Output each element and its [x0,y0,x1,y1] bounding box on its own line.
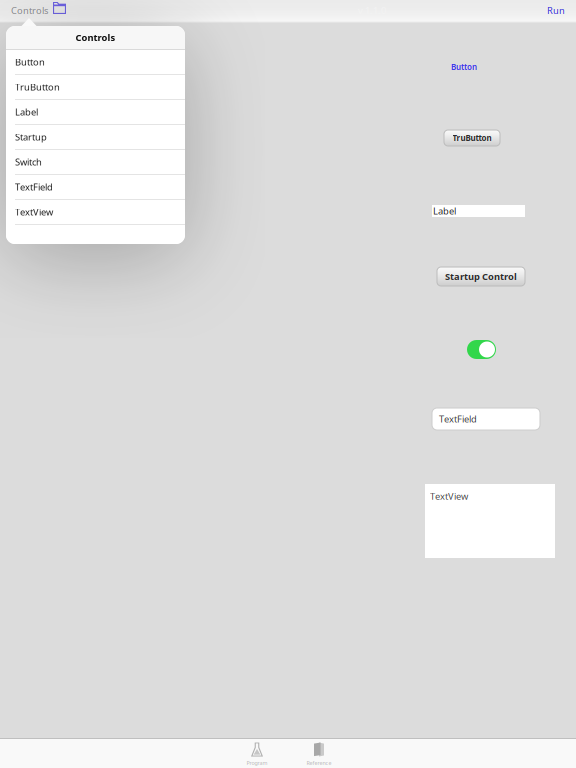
staticText: TruButton [452,133,491,143]
staticText: TextView [15,206,53,218]
staticText: Startup [15,131,47,143]
staticText: Program [246,759,267,767]
staticText: Button [451,62,477,72]
button[interactable]: Switch [6,150,185,175]
button[interactable]: Controls [0,0,72,21]
button[interactable]: Startup [6,125,185,150]
button[interactable]: TruButton [444,130,500,146]
staticText: Label [433,205,456,217]
staticText: Reference [306,759,331,767]
button[interactable]: Run [536,0,576,21]
staticText: Controls [11,4,48,17]
button[interactable]: Button [451,61,477,73]
button[interactable]: Reference [288,739,350,767]
button[interactable]: Switch [467,340,496,359]
staticText: Controls [75,31,115,44]
button[interactable]: TextView [6,200,185,225]
button[interactable]: TruButton [6,75,185,100]
staticText: TextField [15,181,53,193]
button[interactable]: Startup Control [437,267,525,286]
staticText: Run [547,4,565,17]
button[interactable]: Button [6,50,185,75]
staticText: Button [15,56,45,68]
staticText: TextField [439,413,477,425]
staticText: TruButton [15,81,60,93]
button[interactable]: TextView [425,484,555,558]
button[interactable]: TextField [6,175,185,200]
button[interactable]: Program [226,739,288,767]
button[interactable]: Label [6,100,185,125]
button[interactable]: TextField [432,408,540,430]
staticText: Label [15,106,38,118]
staticText: TextView [430,490,468,502]
staticText: Switch [15,156,42,168]
staticText: Startup Control [445,270,517,283]
